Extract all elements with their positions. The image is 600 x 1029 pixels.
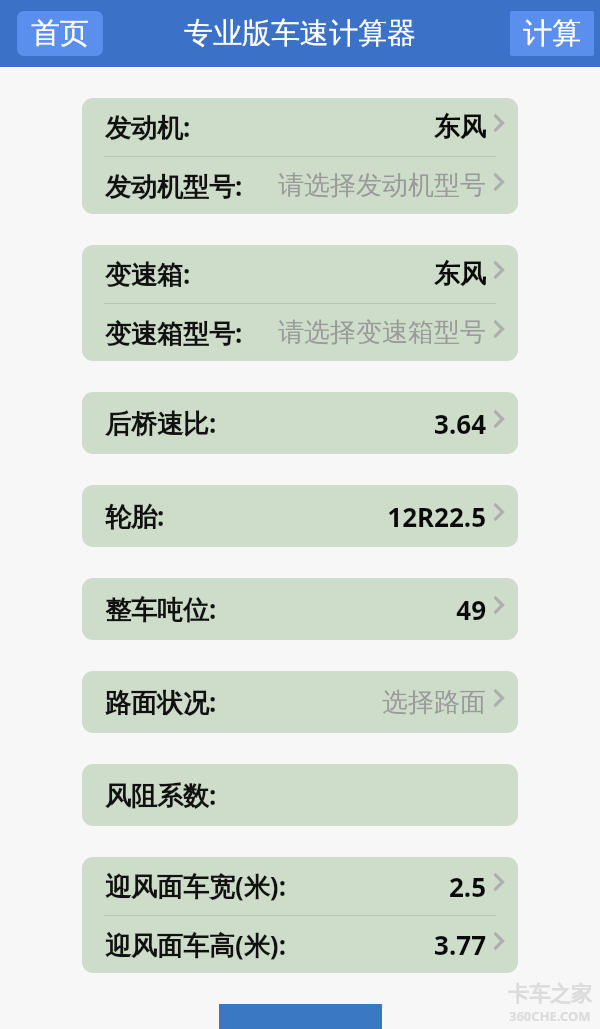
button[interactable]: 整车吨位: — [82, 578, 518, 640]
staticText: 3.64 — [434, 406, 486, 441]
button[interactable]: 迎风面车宽(米): — [82, 857, 518, 915]
button[interactable]: 发动机: — [82, 98, 518, 156]
staticText: 请选择发动机型号 — [278, 169, 486, 202]
button[interactable]: 变速箱: — [82, 245, 518, 303]
staticText: 迎风面车高(米): — [105, 927, 286, 963]
staticText: 风阻系数: — [105, 777, 217, 813]
staticText: 选择路面 — [382, 686, 486, 719]
button[interactable]: 变速箱型号: — [82, 304, 518, 361]
staticText: 首页 — [31, 15, 89, 52]
staticText: 12R22.5 — [387, 499, 486, 534]
button[interactable]: 轮胎: — [82, 485, 518, 547]
staticText: 轮胎: — [105, 498, 165, 534]
button[interactable]: 风阻系数: — [82, 764, 518, 826]
staticText: 360CHE.COM — [509, 1007, 591, 1025]
button[interactable]: 迎风面车高(米): — [82, 916, 518, 973]
staticText: 3.77 — [434, 927, 486, 962]
staticText: 变速箱型号: — [105, 315, 243, 351]
button[interactable]: 计算 — [510, 11, 594, 56]
staticText: 东风 — [434, 258, 486, 291]
staticText: 发动机型号: — [105, 168, 243, 204]
staticText: 专业版车速计算器 — [184, 15, 416, 52]
staticText: 计算 — [523, 15, 581, 52]
staticText: 迎风面车宽(米): — [105, 868, 286, 904]
button[interactable]: 首页 — [17, 11, 103, 56]
staticText: 49 — [456, 592, 486, 627]
staticText: 发动机: — [105, 109, 191, 145]
button[interactable]: 后桥速比: — [82, 392, 518, 454]
button[interactable]: 发动机型号: — [82, 157, 518, 214]
staticText: 东风 — [434, 111, 486, 144]
staticText: 请选择变速箱型号 — [278, 316, 486, 349]
staticText: 路面状况: — [105, 684, 217, 720]
staticText: 整车吨位: — [105, 591, 217, 627]
staticText: 2.5 — [448, 869, 486, 904]
button[interactable]: 路面状况: — [82, 671, 518, 733]
staticText: 变速箱: — [105, 256, 191, 292]
staticText: 卡车之家 — [508, 981, 592, 1007]
staticText: 后桥速比: — [105, 405, 217, 441]
